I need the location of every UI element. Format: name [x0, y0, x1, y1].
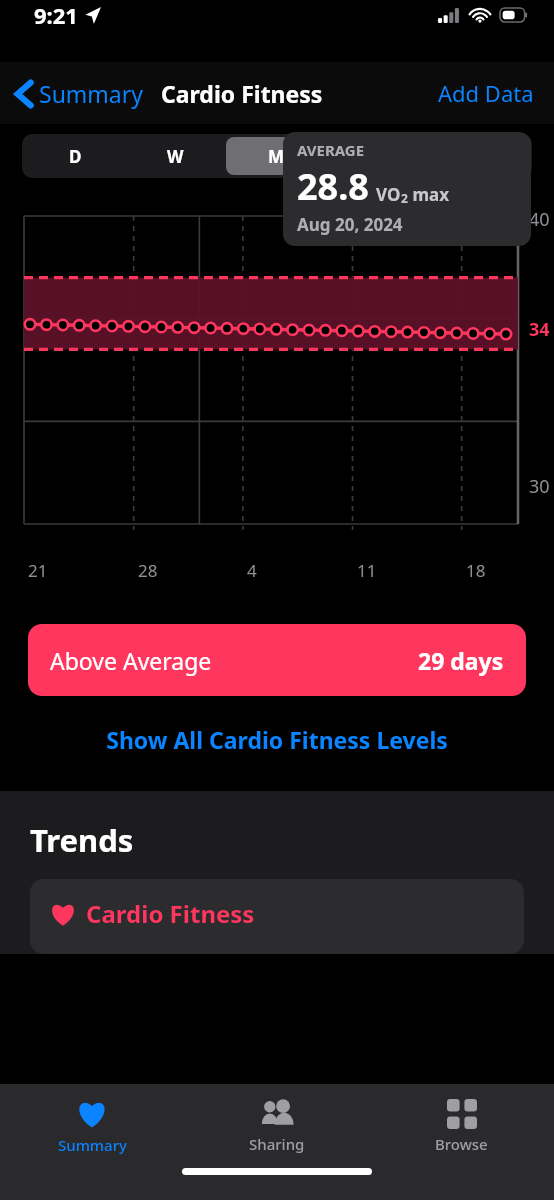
button[interactable]: Browse	[369, 1084, 554, 1168]
staticText: Cardio Fitness	[161, 78, 323, 109]
staticText: VO	[376, 183, 401, 206]
staticText: 9:21	[34, 0, 78, 30]
button[interactable]: Summary	[0, 1084, 184, 1168]
staticText: 11	[357, 559, 377, 582]
button[interactable]: W	[125, 137, 226, 175]
staticText: 21	[28, 559, 48, 582]
staticText: Browse	[435, 1134, 488, 1154]
button[interactable]: Summary	[12, 78, 147, 109]
staticText: AVERAGE	[297, 140, 365, 160]
button[interactable]: D	[25, 137, 125, 175]
staticText: Summary	[58, 1135, 127, 1155]
staticText: M	[268, 145, 285, 168]
staticText: max	[408, 183, 450, 206]
button[interactable]: Sharing	[184, 1084, 369, 1168]
button[interactable]: Show All Cardio Fitness Levels	[0, 718, 554, 761]
button[interactable]: M	[226, 137, 327, 175]
staticText: Add Data	[438, 78, 534, 108]
button[interactable]: Cardio Fitness	[30, 879, 524, 954]
staticText: 28.8	[297, 162, 369, 211]
staticText: Summary	[39, 78, 143, 109]
button[interactable]: Above Average	[28, 624, 526, 696]
staticText: 28	[138, 559, 158, 582]
staticText: 34	[529, 317, 550, 342]
staticText: 40	[529, 207, 550, 232]
staticText: Aug 20, 2024	[297, 213, 403, 236]
button[interactable]: Add Data	[434, 74, 538, 112]
staticText: D	[69, 145, 82, 168]
staticText: 30	[529, 474, 550, 499]
staticText: Sharing	[249, 1134, 305, 1154]
staticText: 4	[247, 559, 257, 582]
staticText: 2	[401, 190, 408, 206]
staticText: Above Average	[50, 645, 212, 676]
staticText: 18	[466, 559, 486, 582]
button[interactable]: 6M	[327, 137, 428, 175]
staticText: 29 days	[418, 645, 504, 676]
staticText: Trends	[30, 819, 134, 861]
staticText: W	[167, 145, 184, 168]
staticText: Cardio Fitness	[86, 897, 255, 930]
staticText: Show All Cardio Fitness Levels	[106, 724, 448, 755]
